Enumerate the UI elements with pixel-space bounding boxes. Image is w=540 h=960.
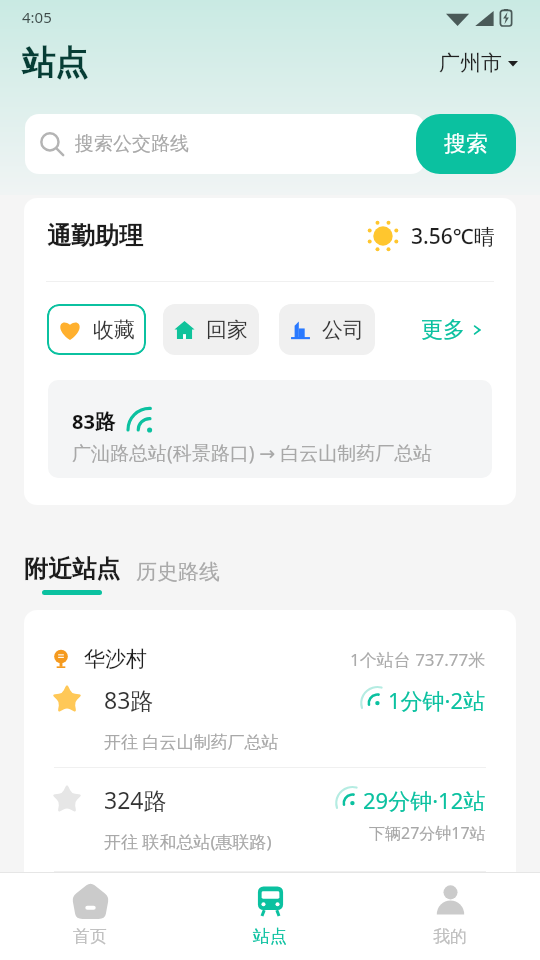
button[interactable]: 广州市: [439, 50, 518, 76]
staticText: 搜索: [444, 130, 488, 158]
staticText: 华沙村: [84, 646, 147, 672]
staticText: 开往 联和总站(惠联路): [104, 830, 272, 853]
staticText: 83路: [104, 684, 154, 715]
button[interactable]: 83路: [48, 380, 492, 478]
button[interactable]: 搜索: [416, 114, 516, 174]
staticText: 更多: [421, 316, 465, 344]
button[interactable]: 首页: [0, 873, 180, 947]
staticText: 29分钟·12站: [363, 785, 486, 815]
staticText: 站点: [22, 42, 88, 84]
staticText: 广州市: [439, 50, 502, 76]
button[interactable]: 历史路线: [136, 554, 220, 585]
staticText: 附近站点: [24, 554, 120, 584]
staticText: 回家: [206, 317, 248, 343]
staticText: 首页: [73, 926, 107, 947]
staticText: 下辆27分钟17站: [369, 822, 486, 844]
staticText: 广汕路总站(科景路口) → 白云山制药厂总站: [72, 440, 433, 466]
staticText: 站点: [253, 926, 287, 947]
button[interactable]: 更多: [421, 316, 484, 344]
staticText: 1个站台 737.77米: [350, 648, 486, 671]
button[interactable]: 83路: [24, 684, 516, 753]
staticText: 公司: [322, 317, 364, 343]
staticText: 324路: [104, 784, 167, 815]
button[interactable]: 回家: [163, 304, 259, 355]
button[interactable]: 附近站点: [24, 554, 120, 595]
staticText: 开往 白云山制药厂总站: [104, 730, 279, 753]
staticText: 搜索公交路线: [75, 132, 189, 156]
staticText: 1分钟·2站: [388, 685, 486, 715]
staticText: 3.56℃晴: [411, 222, 495, 251]
button[interactable]: 搜索公交路线: [25, 114, 425, 174]
button[interactable]: 站点: [180, 873, 360, 947]
staticText: 通勤助理: [47, 221, 143, 251]
staticText: 83路: [72, 408, 115, 435]
staticText: 我的: [433, 926, 467, 947]
button[interactable]: 324路: [24, 784, 516, 853]
staticText: 4:05: [22, 7, 52, 27]
staticText: 收藏: [93, 317, 135, 343]
button[interactable]: 公司: [279, 304, 375, 355]
button[interactable]: 我的: [360, 873, 540, 947]
button[interactable]: 收藏: [47, 304, 146, 355]
